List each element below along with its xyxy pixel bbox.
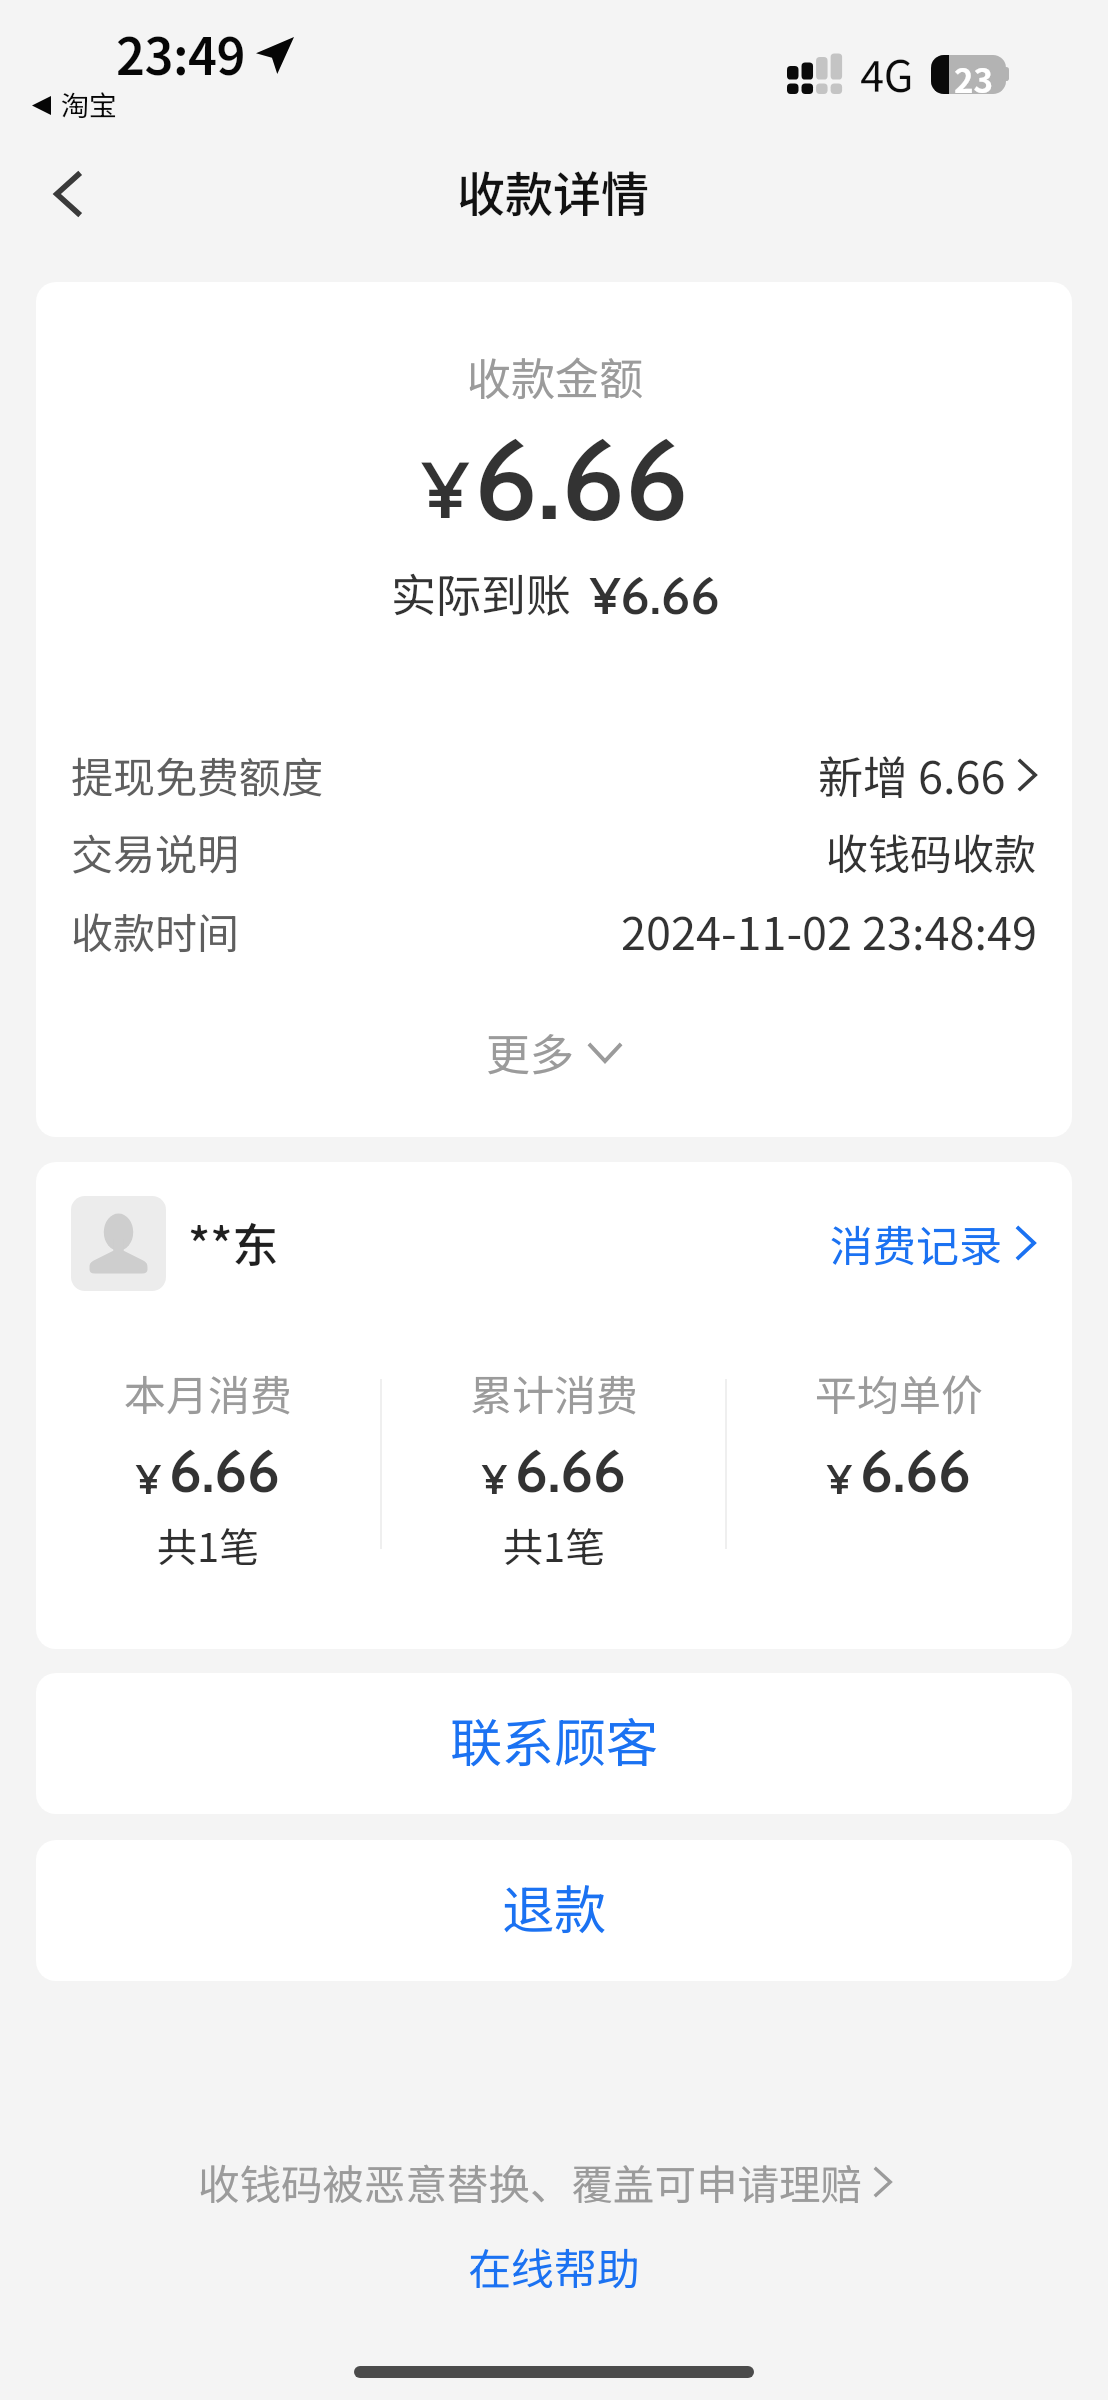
button[interactable]: 在线帮助 (468, 2235, 640, 2297)
staticText: 提现免费额度 (71, 744, 324, 805)
staticText: 23 (954, 55, 993, 94)
staticText: ¥ (136, 1453, 161, 1504)
button[interactable]: 更多 (486, 1020, 623, 1084)
staticText: 交易说明 (71, 821, 240, 882)
staticText: 本月消费 (124, 1362, 293, 1423)
staticText: 收钱码被恶意替换、覆盖可申请理赔 (198, 2152, 863, 2212)
staticText: 23:49 (116, 17, 246, 89)
staticText: 6.66 (169, 1436, 280, 1506)
button[interactable]: 消费记录 (830, 1212, 1036, 1274)
staticText: 新增 6.66 (818, 742, 1006, 807)
button[interactable]: 退款 (36, 1840, 1072, 1981)
staticText: ¥ (422, 441, 469, 538)
staticText: 平均单价 (815, 1362, 984, 1423)
staticText: 联系顾客 (450, 1702, 659, 1777)
staticText: 收钱码收款 (826, 821, 1037, 882)
staticText: 6.66 (515, 1436, 626, 1506)
staticText: 收款金额 (467, 344, 643, 408)
button[interactable]: Back (24, 150, 112, 238)
staticText: **东 (188, 1209, 279, 1276)
staticText: 实际到账 (391, 560, 572, 625)
staticText: 收款时间 (71, 900, 240, 961)
staticText: 更多 (486, 1020, 574, 1084)
button[interactable]: 淘宝 (61, 84, 118, 125)
staticText: 2024-11-02 23:48:49 (621, 898, 1037, 963)
button[interactable]: 提现免费额度 (36, 742, 1072, 807)
staticText: 消费记录 (830, 1212, 1002, 1274)
button[interactable]: 收钱码被恶意替换、覆盖可申请理赔 (198, 2152, 892, 2212)
staticText: 共1笔 (503, 1516, 606, 1574)
staticText: ¥ (827, 1453, 852, 1504)
staticText: 收款详情 (457, 156, 650, 226)
staticText: 4G (860, 42, 914, 104)
staticText: ¥6.66 (590, 564, 720, 627)
staticText: ¥ (482, 1453, 507, 1504)
staticText: 累计消费 (470, 1362, 639, 1423)
staticText: 共1笔 (157, 1516, 260, 1574)
staticText: 淘宝 (61, 84, 118, 125)
button[interactable]: 联系顾客 (36, 1673, 1072, 1814)
staticText: 在线帮助 (468, 2235, 640, 2297)
staticText: 6.66 (474, 411, 688, 547)
staticText: 退款 (502, 1869, 607, 1944)
staticText: 6.66 (860, 1436, 971, 1506)
